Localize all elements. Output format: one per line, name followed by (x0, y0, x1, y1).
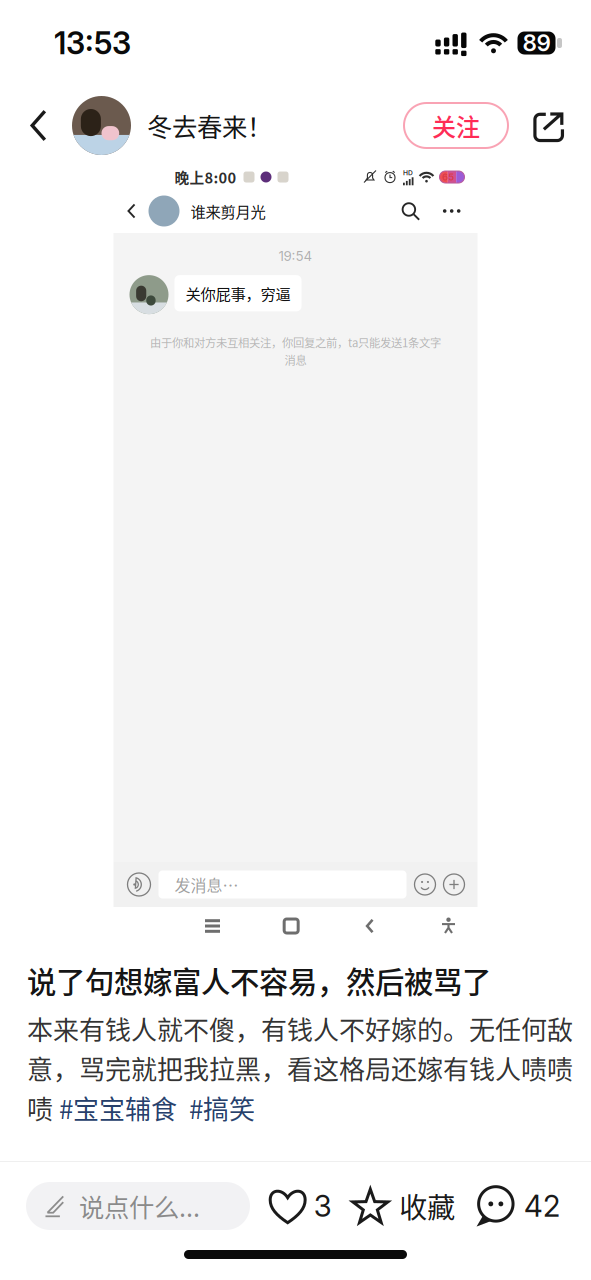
button[interactable]: Back (16, 95, 61, 155)
staticText: 19:54 (278, 248, 312, 264)
staticText: 本来有钱人就不傻，有钱人不好嫁的。无任何敌 (27, 1009, 573, 1047)
staticText: #搞笑 (189, 1089, 255, 1126)
button[interactable]: 42 (474, 1185, 560, 1227)
staticText: HD (403, 169, 413, 177)
staticText: 冬去春来！ (147, 107, 272, 144)
staticText: 由于你和对方未互相关注，你回复之前，ta只能发送1条文字 (150, 334, 441, 350)
staticText: 意，骂完就把我拉黑，看这格局还嫁有钱人啧啧 (27, 1049, 573, 1087)
staticText: #宝宝辅食 (59, 1089, 177, 1126)
staticText: 说点什么... (79, 1188, 200, 1224)
button[interactable]: Share (529, 95, 569, 155)
staticText: 晚上8:00 (174, 166, 236, 188)
staticText: 说了句想嫁富人不容易，然后被骂了 (27, 959, 491, 1001)
staticText: 收藏 (399, 1186, 455, 1226)
staticText: 发消息… (174, 873, 238, 896)
staticText: 13:53 (54, 24, 131, 61)
staticText: 啧 (27, 1089, 59, 1126)
staticText: 关注 (432, 108, 480, 143)
staticText: 42 (524, 1188, 560, 1224)
button[interactable]: 3 (269, 1187, 332, 1225)
button[interactable]: 关注 (404, 103, 508, 148)
button[interactable]: 冬去春来！ (61, 95, 272, 155)
staticText: 消息 (284, 351, 306, 368)
staticText: 谁来剪月光 (190, 200, 265, 222)
staticText: 关你屁事，穷逼 (185, 282, 290, 304)
button[interactable]: 说点什么... (26, 1182, 250, 1230)
button[interactable]: 收藏 (350, 1186, 455, 1226)
staticText: 89 (522, 29, 550, 57)
staticText: 3 (314, 1188, 332, 1224)
staticText: 65 (442, 171, 454, 183)
